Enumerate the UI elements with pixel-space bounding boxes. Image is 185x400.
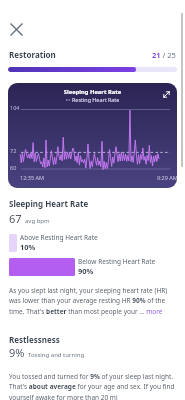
staticText: Below Resting Heart Rate: [78, 257, 156, 266]
staticText: 67: [9, 211, 22, 226]
staticText: 10%: [20, 242, 36, 252]
staticText: Restoration: [9, 49, 56, 60]
button[interactable]: Close: [5, 18, 27, 40]
staticText: You tossed and turned for 9% of your sle…: [9, 372, 176, 400]
button[interactable]: Below Resting Heart Rate: [9, 257, 156, 276]
button[interactable]: Expand chart: [159, 87, 173, 101]
staticText: Restlessness: [9, 334, 60, 345]
staticText: avg bpm: [25, 217, 50, 225]
staticText: Tossing and turning: [28, 351, 85, 359]
staticText: 90%: [78, 266, 94, 276]
staticText: 21 / 25: [152, 50, 176, 60]
staticText: Resting Heart Rate: [72, 96, 120, 103]
staticText: 72: [10, 147, 17, 154]
staticText: As you slept last night, your sleeping h…: [9, 286, 176, 316]
staticText: 9:29 AM: [157, 174, 177, 181]
staticText: Above Resting Heart Rate: [20, 233, 98, 242]
staticText: Sleeping Heart Rate: [9, 198, 89, 209]
staticText: 12:35 AM: [20, 174, 44, 181]
button[interactable]: Above Resting Heart Rate: [9, 233, 98, 252]
staticText: Sleeping Heart Rate: [8, 88, 177, 96]
staticText: 9%: [9, 345, 25, 360]
staticText: 104: [10, 104, 20, 111]
staticText: 60: [10, 164, 17, 171]
